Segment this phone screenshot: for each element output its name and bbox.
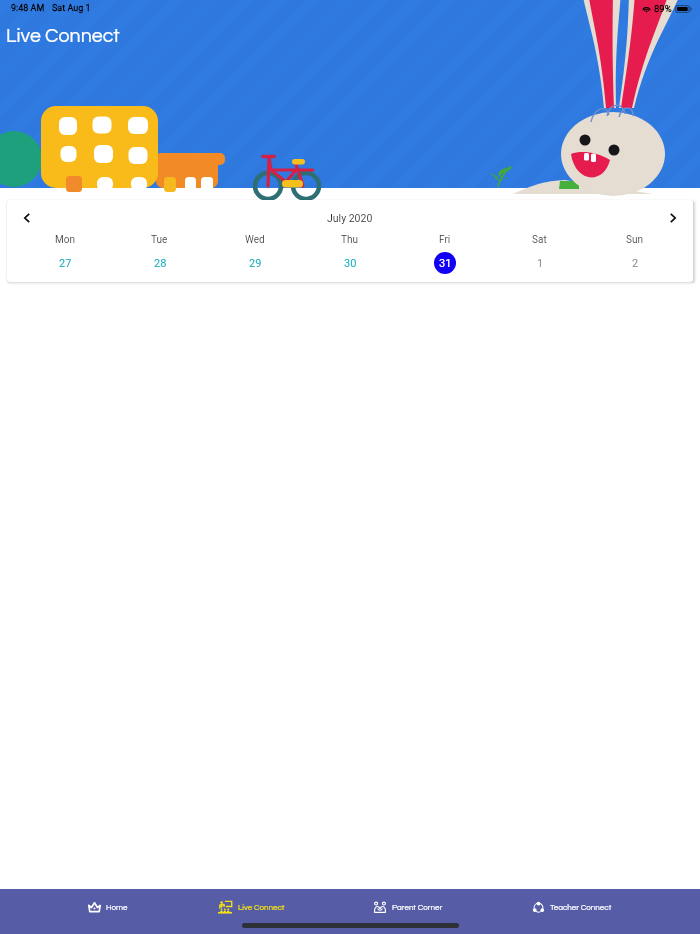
staticText: Live Connect: [6, 26, 120, 46]
button[interactable]: Sun: [587, 234, 682, 274]
staticText: 89%: [654, 3, 672, 14]
staticText: Teacher Connect: [550, 903, 612, 911]
staticText: Sat Aug 1: [52, 3, 91, 14]
staticText: Parent Corner: [392, 903, 443, 911]
button[interactable]: Home: [88, 889, 128, 925]
button[interactable]: Wed: [207, 234, 302, 274]
button[interactable]: Thu: [302, 234, 397, 274]
button[interactable]: Parent Corner: [373, 889, 443, 925]
button[interactable]: Previous week: [15, 206, 39, 230]
staticText: Wed: [245, 234, 265, 246]
staticText: Thu: [341, 234, 358, 246]
button[interactable]: Mon: [18, 234, 112, 274]
staticText: Fri: [439, 234, 451, 246]
staticText: Tue: [151, 234, 168, 246]
staticText: 1: [537, 257, 544, 270]
button[interactable]: Tue: [112, 234, 207, 274]
staticText: 28: [154, 257, 167, 270]
button[interactable]: Sat: [492, 234, 587, 274]
button[interactable]: Teacher Connect: [532, 889, 612, 925]
staticText: 29: [249, 257, 262, 270]
button[interactable]: Fri: [397, 234, 492, 274]
staticText: July 2020: [327, 212, 373, 224]
staticText: Mon: [55, 234, 75, 246]
staticText: Home: [106, 903, 128, 911]
staticText: 27: [59, 257, 72, 270]
button[interactable]: Next week: [661, 206, 685, 230]
staticText: Live Connect: [238, 903, 285, 911]
staticText: Sun: [626, 234, 643, 246]
staticText: 2: [632, 257, 639, 270]
staticText: 9:48 AM: [11, 3, 45, 14]
staticText: 31: [439, 257, 452, 270]
button[interactable]: Live Connect: [217, 889, 285, 925]
staticText: 30: [344, 257, 357, 270]
staticText: Sat: [532, 234, 547, 246]
